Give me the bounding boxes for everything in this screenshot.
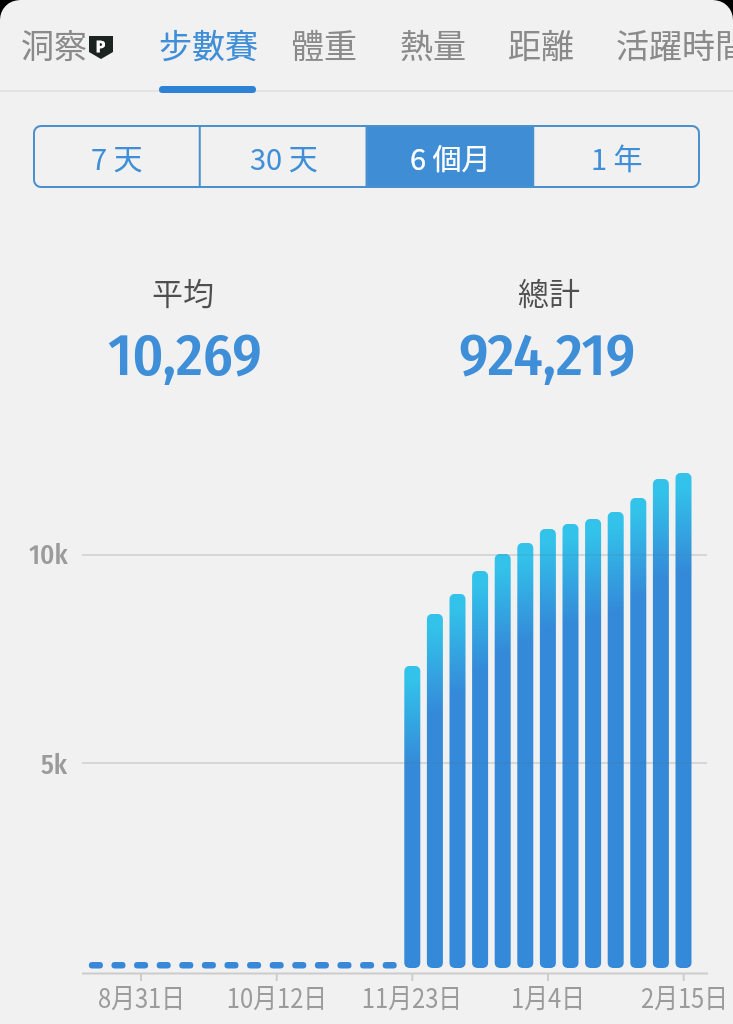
staticText: 10月12日 [227, 977, 327, 1016]
button[interactable]: 體重 [291, 12, 357, 76]
button[interactable]: 熱量 [400, 12, 466, 76]
staticText: 距離 [508, 20, 574, 68]
staticText: 8月31日 [98, 977, 185, 1016]
staticText: 7 天 [91, 136, 143, 178]
button[interactable]: 步數賽 [159, 12, 258, 76]
staticText: P [96, 36, 106, 56]
staticText: 1月4日 [511, 977, 585, 1016]
staticText: 2月15日 [641, 977, 728, 1016]
button[interactable]: 7 天 [33, 125, 200, 188]
button[interactable]: 洞察 [21, 12, 87, 76]
staticText: 1 年 [591, 136, 643, 178]
staticText: 30 天 [250, 136, 318, 178]
staticText: 總計 [518, 269, 580, 314]
staticText: 11月23日 [362, 977, 462, 1016]
staticText: 平均 [152, 269, 214, 314]
button[interactable]: 1 年 [533, 125, 700, 188]
staticText: 10,269 [108, 320, 262, 391]
button[interactable]: 30 天 [200, 125, 367, 188]
staticText: 924,219 [459, 320, 636, 391]
staticText: 步數賽 [159, 20, 258, 68]
staticText: 6 個月 [410, 136, 491, 178]
staticText: 活躍時間 [616, 20, 733, 68]
staticText: 熱量 [400, 20, 466, 68]
button[interactable]: 活躍時間 [616, 12, 733, 76]
button[interactable]: 距離 [508, 12, 574, 76]
button[interactable]: 6 個月 [367, 125, 534, 188]
staticText: 洞察 [21, 20, 87, 68]
staticText: 10k [29, 539, 68, 571]
staticText: 體重 [291, 20, 357, 68]
staticText: 5k [41, 749, 68, 781]
